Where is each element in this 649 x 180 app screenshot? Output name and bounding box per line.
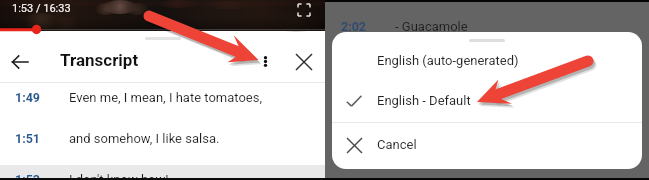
staticText: English - Default [377, 93, 471, 108]
button[interactable]: English (auto-generated) [332, 41, 642, 81]
staticText: I don't know how! [69, 172, 169, 180]
staticText: and somehow, I like salsa. [69, 131, 220, 146]
staticText: - Guacamole [395, 19, 468, 34]
button[interactable]: 1:49 [0, 83, 325, 124]
staticText: Transcript [60, 50, 139, 70]
button[interactable]: Back [7, 49, 33, 75]
staticText: Even me, I mean, I hate tomatoes, [69, 90, 262, 105]
staticText: Cancel [377, 137, 417, 152]
staticText: 1:51 [15, 131, 41, 146]
button[interactable]: Cancel [332, 123, 642, 167]
button[interactable]: More options [254, 50, 276, 72]
staticText: English (auto-generated) [377, 53, 519, 68]
button[interactable]: 1:51 [0, 124, 325, 165]
staticText: 1:49 [15, 90, 41, 105]
staticText: 1:53 [15, 172, 41, 180]
button[interactable]: English - Default [332, 81, 642, 122]
staticText: 2:02 [341, 19, 367, 34]
button[interactable]: 1:53 [0, 165, 325, 180]
staticText: 1:53 / 16:33 [12, 2, 71, 15]
button[interactable]: Close [292, 50, 316, 74]
button[interactable]: Fullscreen [295, 1, 313, 19]
